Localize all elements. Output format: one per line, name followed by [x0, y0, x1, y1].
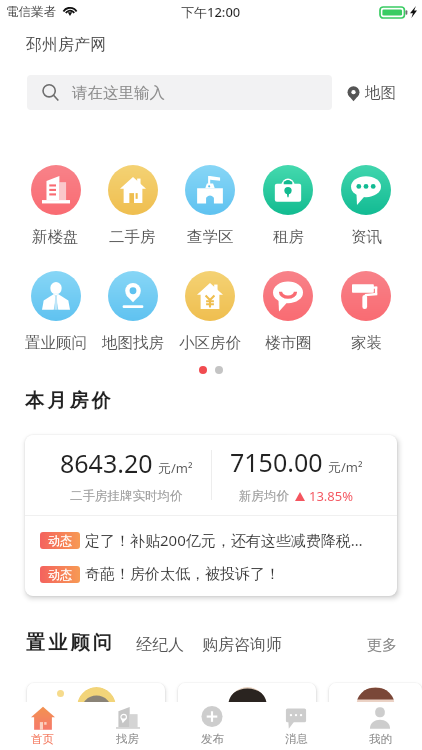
- staticText: 元/m²: [328, 458, 363, 476]
- button[interactable]: 首页: [0, 702, 85, 750]
- button[interactable]: 经纪人: [136, 635, 184, 655]
- staticText: 奇葩！房价太低，被投诉了！: [85, 565, 280, 584]
- staticText: 本月房价: [25, 389, 114, 413]
- button[interactable]: 购房咨询师: [202, 635, 282, 655]
- button[interactable]: 家装: [327, 271, 405, 353]
- staticText: 13.85%: [309, 487, 354, 505]
- staticText: 动态: [48, 533, 72, 548]
- staticText: 楼市圈: [265, 333, 312, 353]
- staticText: 新房均价: [239, 488, 289, 504]
- staticText: 新楼盘: [32, 227, 79, 247]
- staticText: 電信業者: [6, 4, 56, 20]
- staticText: 我的: [369, 732, 392, 746]
- button[interactable]: 小区房价: [171, 271, 249, 353]
- button[interactable]: 置业顾问: [17, 271, 94, 353]
- staticText: 置业顾问: [25, 333, 87, 353]
- button[interactable]: [27, 683, 165, 750]
- staticText: 经纪人: [136, 635, 184, 655]
- button[interactable]: 动态: [40, 530, 385, 550]
- staticText: 请在这里输入: [72, 83, 165, 103]
- button[interactable]: 我的: [338, 702, 422, 750]
- staticText: 租房: [273, 227, 304, 247]
- staticText: 置业顾问: [26, 631, 115, 655]
- staticText: 更多: [367, 636, 397, 655]
- button[interactable]: 8643.20: [41, 435, 211, 515]
- staticText: 定了！补贴200亿元，还有这些减费降税…: [85, 530, 363, 550]
- staticText: 找房: [116, 732, 139, 746]
- staticText: 二手房挂牌实时均价: [70, 488, 183, 504]
- staticText: 动态: [48, 567, 72, 582]
- button[interactable]: [329, 683, 422, 750]
- staticText: 查学区: [187, 227, 234, 247]
- staticText: 消息: [285, 732, 308, 746]
- button[interactable]: 发布: [170, 702, 254, 750]
- staticText: 发布: [201, 732, 224, 746]
- button[interactable]: 地图找房: [94, 271, 171, 353]
- button[interactable]: 更多: [367, 636, 397, 655]
- staticText: 资讯: [351, 227, 382, 247]
- button[interactable]: 地图: [347, 83, 396, 103]
- button[interactable]: 楼市圈: [249, 271, 327, 353]
- staticText: 下午12:00: [181, 3, 241, 21]
- button[interactable]: 7150.00: [211, 435, 381, 515]
- staticText: 家装: [351, 333, 382, 353]
- staticText: 地图: [365, 83, 396, 103]
- staticText: 8643.20: [60, 446, 153, 480]
- staticText: 购房咨询师: [202, 635, 282, 655]
- staticText: 小区房价: [179, 333, 241, 353]
- staticText: 元/m²: [158, 459, 193, 477]
- button[interactable]: 请在这里输入: [27, 75, 332, 110]
- button[interactable]: 二手房: [94, 165, 171, 247]
- staticText: 二手房: [109, 227, 156, 247]
- button[interactable]: 查学区: [171, 165, 249, 247]
- button[interactable]: 资讯: [327, 165, 405, 247]
- staticText: 首页: [31, 732, 54, 746]
- button[interactable]: 租房: [249, 165, 327, 247]
- button[interactable]: 找房: [85, 702, 170, 750]
- staticText: 7150.00: [230, 445, 323, 479]
- staticText: 邳州房产网: [26, 35, 106, 55]
- staticText: 地图找房: [102, 333, 164, 353]
- button[interactable]: [178, 683, 316, 750]
- button[interactable]: 消息: [254, 702, 338, 750]
- button[interactable]: 新楼盘: [17, 165, 94, 247]
- button[interactable]: 动态: [40, 565, 385, 584]
